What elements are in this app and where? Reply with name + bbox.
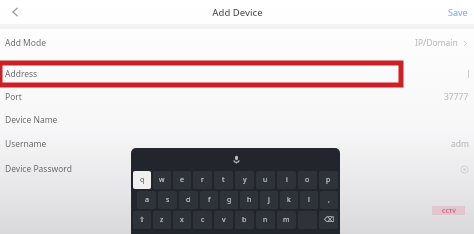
button[interactable]: ,	[320, 191, 338, 209]
staticText: t	[222, 175, 225, 185]
button[interactable]: Voice input	[230, 153, 242, 165]
staticText: i	[286, 175, 288, 185]
button[interactable]: Address	[0, 63, 474, 85]
button[interactable]: n	[256, 211, 275, 229]
button[interactable]: q	[133, 171, 151, 189]
button[interactable]: t	[214, 171, 233, 189]
staticText: Port	[5, 91, 22, 103]
staticText: c	[201, 215, 205, 225]
staticText: ⌫	[324, 216, 334, 224]
staticText: s	[166, 195, 170, 205]
staticText: q	[140, 175, 145, 185]
button[interactable]: Add Mode	[0, 31, 474, 55]
button[interactable]: h	[240, 191, 258, 209]
button[interactable]: f	[200, 191, 218, 209]
staticText: Add Mode	[5, 37, 46, 49]
staticText: d	[186, 195, 191, 205]
staticText: a	[145, 195, 149, 205]
staticText: x	[180, 215, 184, 225]
button[interactable]: Save	[442, 2, 474, 22]
button[interactable]: Username	[0, 131, 474, 156]
button[interactable]: i	[277, 171, 296, 189]
button[interactable]: m	[277, 211, 296, 229]
button[interactable]: w	[153, 171, 171, 189]
staticText: z	[160, 215, 164, 225]
staticText: ,	[328, 195, 330, 205]
staticText: l	[308, 195, 310, 205]
button[interactable]: e	[173, 171, 191, 189]
button[interactable]: o	[298, 171, 317, 189]
button[interactable]: Show password	[459, 164, 469, 174]
staticText: j	[268, 195, 270, 205]
staticText: Save	[448, 6, 468, 18]
button[interactable]: k	[280, 191, 298, 209]
button[interactable]: a	[137, 191, 156, 209]
button[interactable]: y	[235, 171, 254, 189]
button[interactable]: Back	[4, 1, 26, 23]
button[interactable]: Device Password	[0, 156, 474, 181]
staticText: CCTV	[442, 207, 456, 214]
button[interactable]: ⇧	[133, 211, 151, 229]
button[interactable]: z	[153, 211, 171, 229]
staticText: Address	[5, 68, 38, 80]
staticText: n	[263, 215, 268, 225]
staticText: Device Name	[5, 114, 58, 126]
staticText: IP/Domain	[415, 37, 458, 49]
staticText: e	[180, 175, 184, 185]
staticText: Device Password	[5, 163, 72, 175]
staticText: u	[263, 175, 268, 185]
staticText: 37777	[444, 91, 469, 103]
staticText: Username	[5, 138, 47, 150]
button[interactable]: Port	[0, 85, 474, 108]
staticText: Add Device	[212, 6, 263, 19]
staticText: w	[159, 175, 165, 185]
staticText: adm	[451, 138, 469, 150]
button[interactable]: r	[193, 171, 212, 189]
button[interactable]: ⌫	[319, 211, 338, 229]
staticText: g	[227, 195, 232, 205]
button[interactable]: l	[300, 191, 318, 209]
staticText: m	[283, 215, 290, 225]
staticText: y	[243, 175, 247, 185]
button[interactable]: p	[319, 171, 338, 189]
button[interactable]: j	[260, 191, 278, 209]
staticText: v	[222, 215, 226, 225]
button[interactable]: Device Name	[0, 108, 474, 131]
button[interactable]: x	[173, 211, 191, 229]
button[interactable]: v	[214, 211, 233, 229]
staticText: b	[242, 215, 247, 225]
staticText: f	[208, 195, 211, 205]
staticText: o	[305, 175, 310, 185]
button[interactable]: b	[235, 211, 254, 229]
button[interactable]: u	[256, 171, 275, 189]
button[interactable]: c	[193, 211, 212, 229]
button[interactable]: g	[220, 191, 238, 209]
staticText: r	[201, 175, 204, 185]
staticText: ⇧	[139, 216, 145, 224]
staticText: k	[287, 195, 291, 205]
staticText: p	[326, 175, 331, 185]
button[interactable]: d	[179, 191, 198, 209]
button[interactable]: s	[158, 191, 177, 209]
staticText: h	[247, 195, 252, 205]
